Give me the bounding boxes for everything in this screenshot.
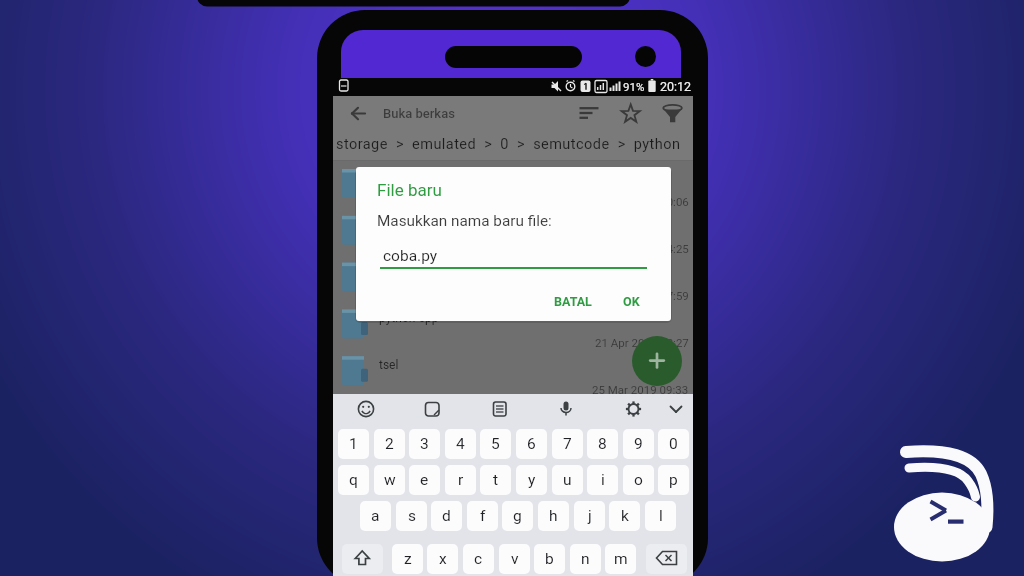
staticText: 4 (456, 435, 465, 453)
button[interactable]: y (516, 465, 547, 495)
button[interactable]: f (467, 501, 498, 531)
button[interactable] (333, 301, 693, 347)
staticText: v (511, 550, 519, 568)
staticText: x (439, 550, 447, 568)
button[interactable]: c (463, 544, 494, 574)
button[interactable]: BATAL (540, 286, 605, 317)
staticText: latihan (379, 264, 416, 278)
staticText: b (545, 550, 554, 568)
staticText: w (384, 471, 396, 489)
staticText: n (581, 550, 590, 568)
staticText: 91% (623, 80, 645, 93)
staticText: 1 (349, 435, 358, 453)
button[interactable]: 1 (338, 429, 369, 459)
button[interactable] (333, 207, 693, 253)
staticText: Buka berkas (383, 106, 455, 121)
button[interactable] (646, 544, 687, 574)
staticText: a (371, 507, 380, 525)
staticText: r (458, 471, 464, 489)
staticText: 22 Apr 2019 17:59 (595, 289, 689, 302)
staticText: u (563, 471, 572, 489)
staticText: data (379, 218, 403, 232)
button[interactable]: s (396, 501, 427, 531)
button[interactable]: p (658, 465, 689, 495)
staticText: g (513, 507, 522, 525)
button[interactable]: v (499, 544, 530, 574)
staticText: p (669, 471, 678, 489)
staticText: k (621, 507, 629, 525)
staticText: e (420, 471, 429, 489)
button[interactable]: w (374, 465, 405, 495)
button[interactable]: z (392, 544, 423, 574)
staticText: h (549, 507, 558, 525)
staticText: 8 (598, 435, 607, 453)
staticText: j (588, 507, 592, 525)
staticText: l (659, 507, 663, 525)
staticText: 20:12 (660, 79, 692, 94)
button[interactable]: 8 (587, 429, 618, 459)
staticText: q (349, 471, 358, 489)
staticText: i (601, 471, 605, 489)
staticText: y (528, 471, 536, 489)
staticText: 7 (563, 435, 572, 453)
staticText: z (404, 550, 412, 568)
button[interactable]: x (427, 544, 458, 574)
button[interactable]: 0 (658, 429, 689, 459)
staticText: BATAL (554, 294, 592, 309)
button[interactable] (342, 544, 383, 574)
button[interactable]: i (587, 465, 618, 495)
staticText: 26 Apr 2019 14:25 (595, 242, 689, 255)
button[interactable]: r (445, 465, 476, 495)
button[interactable]: 3 (409, 429, 440, 459)
button[interactable]: 6 (516, 429, 547, 459)
staticText: storage > emulated > 0 > semutcode > pyt… (336, 136, 681, 153)
button[interactable]: OK (610, 286, 652, 317)
staticText: t (493, 471, 499, 489)
button[interactable]: m (605, 544, 636, 574)
button[interactable]: q (338, 465, 369, 495)
button[interactable]: o (623, 465, 654, 495)
staticText: f (480, 507, 486, 525)
staticText: coba.py (383, 247, 438, 265)
staticText: File baru (377, 180, 442, 200)
button[interactable]: 4 (445, 429, 476, 459)
button[interactable]: 5 (480, 429, 511, 459)
button[interactable] (632, 336, 682, 386)
button[interactable]: t (480, 465, 511, 495)
button[interactable]: 2 (374, 429, 405, 459)
button[interactable] (333, 254, 693, 300)
button[interactable]: l (645, 501, 676, 531)
staticText: o (634, 471, 643, 489)
staticText: 5 (491, 435, 500, 453)
button[interactable] (333, 161, 693, 207)
button[interactable] (333, 348, 693, 394)
button[interactable]: h (538, 501, 569, 531)
staticText: 3 (420, 435, 429, 453)
staticText: d (442, 507, 451, 525)
button[interactable]: 7 (552, 429, 583, 459)
staticText: 25 Mar 2019 09:33 (592, 383, 689, 396)
button[interactable]: n (570, 544, 601, 574)
button[interactable]: k (609, 501, 640, 531)
staticText: OK (623, 294, 640, 309)
staticText: coba (379, 171, 406, 185)
staticText: 6 (527, 435, 536, 453)
staticText: 9 (634, 435, 643, 453)
button[interactable]: 9 (623, 429, 654, 459)
staticText: 0 (669, 435, 678, 453)
button[interactable]: a (360, 501, 391, 531)
staticText: 26 Apr 2019 20:06 (595, 195, 689, 208)
staticText: python-cpp (379, 311, 439, 325)
staticText: 2 (385, 435, 394, 453)
button[interactable]: e (409, 465, 440, 495)
button[interactable]: g (502, 501, 533, 531)
staticText: Masukkan nama baru file: (377, 212, 552, 230)
button[interactable]: d (431, 501, 462, 531)
staticText: m (614, 550, 628, 568)
staticText: tsel (379, 358, 399, 372)
button[interactable]: b (534, 544, 565, 574)
staticText: s (408, 507, 416, 525)
button[interactable]: j (574, 501, 605, 531)
button[interactable]: u (552, 465, 583, 495)
staticText: 21 Apr 2019 18:27 (595, 336, 689, 349)
